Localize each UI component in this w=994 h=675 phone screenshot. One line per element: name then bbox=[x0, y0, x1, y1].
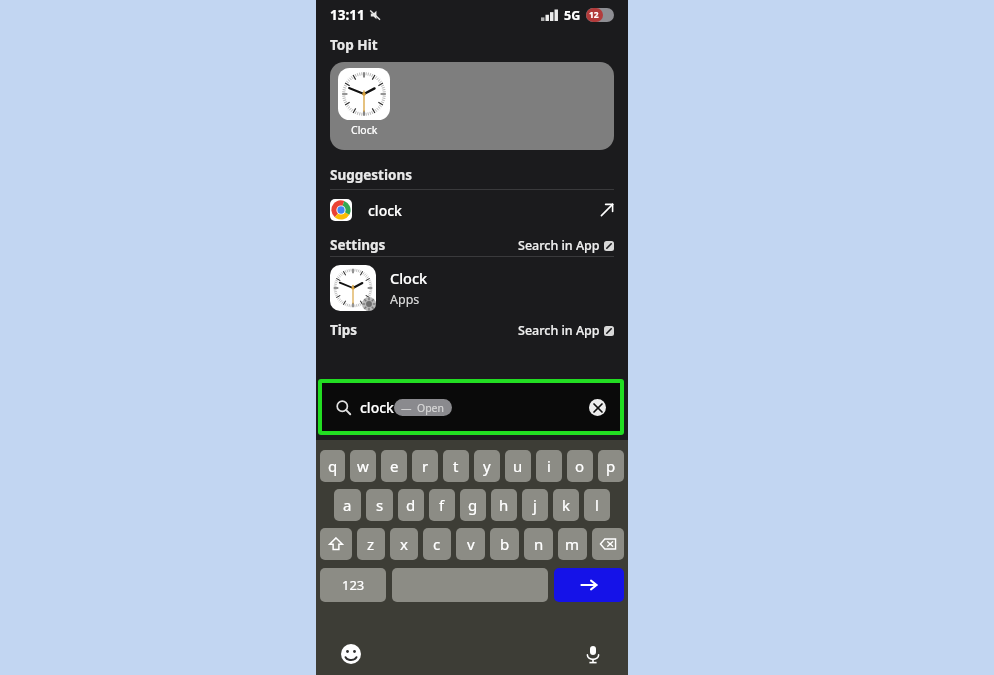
button[interactable]: Clock bbox=[330, 62, 614, 150]
button[interactable]: Search in App bbox=[518, 322, 614, 339]
button[interactable]: Voice input bbox=[580, 641, 606, 667]
staticText: Top Hit bbox=[330, 36, 378, 54]
button[interactable]: g bbox=[460, 489, 486, 521]
button[interactable]: h bbox=[491, 489, 517, 521]
staticText: z bbox=[367, 534, 375, 554]
staticText: Tips bbox=[330, 321, 358, 339]
staticText: a bbox=[343, 495, 352, 515]
staticText: Suggestions bbox=[330, 166, 412, 184]
button[interactable]: l bbox=[584, 489, 610, 521]
button[interactable]: r bbox=[412, 450, 438, 482]
staticText: i bbox=[547, 456, 551, 476]
staticText: r bbox=[422, 456, 429, 476]
button[interactable]: Clock bbox=[330, 257, 614, 319]
button[interactable]: clock bbox=[336, 390, 606, 424]
staticText: h bbox=[499, 495, 509, 515]
staticText: 123 bbox=[342, 576, 365, 594]
staticText: 5G bbox=[564, 7, 581, 24]
button[interactable]: v bbox=[456, 528, 485, 560]
staticText: clock bbox=[360, 398, 394, 417]
staticText: b bbox=[500, 534, 510, 554]
staticText: e bbox=[390, 456, 399, 476]
staticText: u bbox=[513, 456, 523, 476]
staticText: l bbox=[595, 495, 599, 515]
button[interactable]: b bbox=[490, 528, 519, 560]
button[interactable]: Backspace bbox=[592, 528, 624, 560]
staticText: j bbox=[533, 495, 537, 515]
button[interactable]: a bbox=[334, 489, 361, 521]
button[interactable]: Search bbox=[554, 568, 624, 602]
staticText: m bbox=[565, 534, 580, 554]
button[interactable]: i bbox=[536, 450, 562, 482]
staticText: k bbox=[562, 495, 571, 515]
button[interactable]: s bbox=[366, 489, 393, 521]
staticText: 13:11 bbox=[330, 6, 365, 24]
staticText: y bbox=[483, 456, 491, 476]
button[interactable]: o bbox=[567, 450, 593, 482]
button[interactable]: f bbox=[429, 489, 455, 521]
staticText: n bbox=[534, 534, 544, 554]
staticText: Clock bbox=[390, 268, 428, 288]
button[interactable]: k bbox=[553, 489, 579, 521]
button[interactable]: x bbox=[390, 528, 418, 560]
staticText: q bbox=[328, 456, 338, 476]
staticText: Clock bbox=[351, 123, 378, 137]
staticText: Search in App bbox=[518, 237, 600, 254]
staticText: g bbox=[468, 495, 478, 515]
staticText: o bbox=[575, 456, 585, 476]
staticText: Settings bbox=[330, 236, 386, 254]
button[interactable]: w bbox=[350, 450, 376, 482]
staticText: s bbox=[376, 495, 384, 515]
staticText: c bbox=[433, 534, 441, 554]
button[interactable]: j bbox=[522, 489, 548, 521]
staticText: Search in App bbox=[518, 322, 600, 339]
staticText: Apps bbox=[390, 291, 420, 308]
staticText: — Open bbox=[401, 401, 445, 415]
button[interactable]: clock bbox=[330, 190, 614, 230]
button[interactable]: q bbox=[320, 450, 345, 482]
staticText: f bbox=[439, 495, 445, 515]
button[interactable]: Clear search bbox=[589, 399, 606, 416]
button[interactable]: p bbox=[598, 450, 624, 482]
button[interactable]: 123 bbox=[320, 568, 386, 602]
button[interactable]: Search in App bbox=[518, 237, 614, 254]
staticText: 12 bbox=[589, 9, 599, 21]
other: Open suggestion bbox=[600, 203, 614, 217]
button[interactable]: c bbox=[423, 528, 451, 560]
button[interactable]: n bbox=[524, 528, 553, 560]
button[interactable]: Shift bbox=[320, 528, 352, 560]
staticText: v bbox=[467, 534, 475, 554]
staticText: x bbox=[400, 534, 408, 554]
button[interactable]: u bbox=[505, 450, 531, 482]
button[interactable]: Emoji bbox=[338, 641, 364, 667]
staticText: t bbox=[453, 456, 459, 476]
button[interactable]: z bbox=[357, 528, 385, 560]
staticText: d bbox=[406, 495, 416, 515]
button[interactable]: t bbox=[443, 450, 469, 482]
button[interactable]: Space bbox=[392, 568, 548, 602]
button[interactable]: y bbox=[474, 450, 500, 482]
button[interactable]: d bbox=[398, 489, 424, 521]
staticText: clock bbox=[368, 201, 402, 220]
button[interactable]: e bbox=[381, 450, 407, 482]
button[interactable]: m bbox=[558, 528, 587, 560]
staticText: p bbox=[606, 456, 616, 476]
staticText: w bbox=[357, 456, 369, 476]
